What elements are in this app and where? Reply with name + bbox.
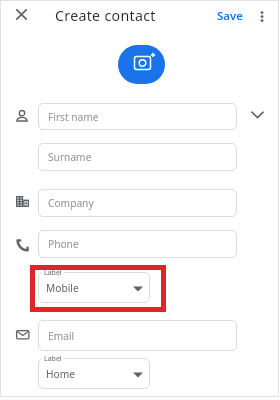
button[interactable]: Surname	[38, 143, 237, 171]
staticText: Home	[46, 367, 75, 381]
button[interactable]: Phone	[38, 230, 237, 258]
staticText: Label	[44, 268, 62, 278]
button[interactable]	[245, 104, 269, 126]
staticText: Email	[48, 329, 75, 343]
staticText: Create contact	[55, 6, 156, 25]
staticText: Phone	[48, 237, 79, 251]
staticText: Surname	[48, 150, 92, 164]
button[interactable]: Save	[214, 0, 246, 31]
button[interactable]: Company	[38, 189, 237, 217]
staticText: Label	[44, 354, 62, 364]
button[interactable]	[10, 2, 32, 26]
button[interactable]	[118, 45, 165, 84]
button[interactable]: Home	[38, 358, 150, 389]
button[interactable]: Email	[38, 320, 237, 351]
staticText: Mobile	[46, 281, 79, 295]
staticText: Company	[48, 196, 94, 210]
staticText: First name	[48, 110, 99, 124]
button[interactable]: Mobile	[38, 272, 150, 303]
button[interactable]	[253, 3, 271, 29]
staticText: Save	[217, 8, 244, 24]
button[interactable]: First name	[38, 103, 237, 130]
